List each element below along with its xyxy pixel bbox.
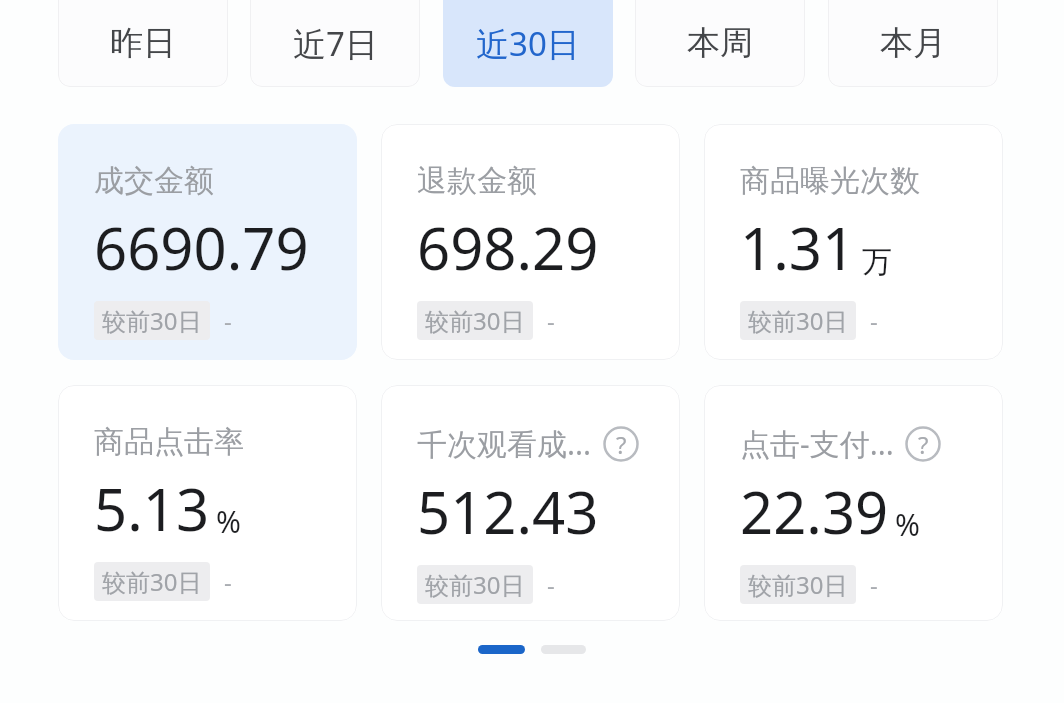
staticText: 昨日 [110, 22, 176, 64]
staticText: 1.31 [740, 208, 856, 287]
button[interactable]: 本周 [635, 0, 805, 87]
staticText: 512.43 [417, 472, 599, 551]
staticText: 本月 [880, 22, 946, 64]
staticText: 万 [862, 243, 892, 281]
staticText: - [547, 568, 555, 601]
staticText: % [216, 501, 241, 542]
staticText: 698.29 [417, 208, 599, 287]
staticText: - [224, 304, 232, 337]
staticText: ? [918, 428, 929, 461]
staticText: 商品点击率 [94, 423, 244, 461]
staticText: 近30日 [476, 21, 580, 66]
button[interactable]: 昨日 [58, 0, 228, 87]
button[interactable]: 成交金额 [58, 124, 357, 360]
button[interactable]: 近30日 [443, 0, 613, 87]
button[interactable]: 商品点击率 [58, 385, 357, 621]
button[interactable]: 本月 [828, 0, 998, 87]
button[interactable]: 说明 [904, 425, 942, 463]
staticText: 较前30日 [425, 304, 525, 337]
staticText: - [547, 304, 555, 337]
staticText: 6690.79 [94, 208, 309, 287]
staticText: 较前30日 [748, 304, 848, 337]
staticText: ? [616, 428, 627, 461]
staticText: 5.13 [94, 469, 210, 548]
staticText: 千次观看成... [417, 423, 592, 464]
staticText: 本周 [687, 22, 753, 64]
button[interactable]: 点击-支付... [704, 385, 1003, 621]
button[interactable]: 退款金额 [381, 124, 680, 360]
staticText: 较前30日 [102, 565, 202, 598]
button[interactable]: 说明 [602, 425, 640, 463]
staticText: 商品曝光次数 [740, 162, 920, 200]
staticText: 退款金额 [417, 162, 537, 200]
button[interactable]: 千次观看成... [381, 385, 680, 621]
staticText: 较前30日 [748, 568, 848, 601]
button[interactable]: 近7日 [250, 0, 420, 87]
staticText: - [870, 568, 878, 601]
staticText: 22.39 [740, 472, 889, 551]
staticText: 较前30日 [425, 568, 525, 601]
staticText: 成交金额 [94, 162, 214, 200]
staticText: - [224, 565, 232, 598]
staticText: % [895, 504, 920, 545]
staticText: 较前30日 [102, 304, 202, 337]
staticText: 点击-支付... [740, 423, 894, 464]
staticText: - [870, 304, 878, 337]
button[interactable]: 商品曝光次数 [704, 124, 1003, 360]
staticText: 近7日 [293, 21, 378, 66]
